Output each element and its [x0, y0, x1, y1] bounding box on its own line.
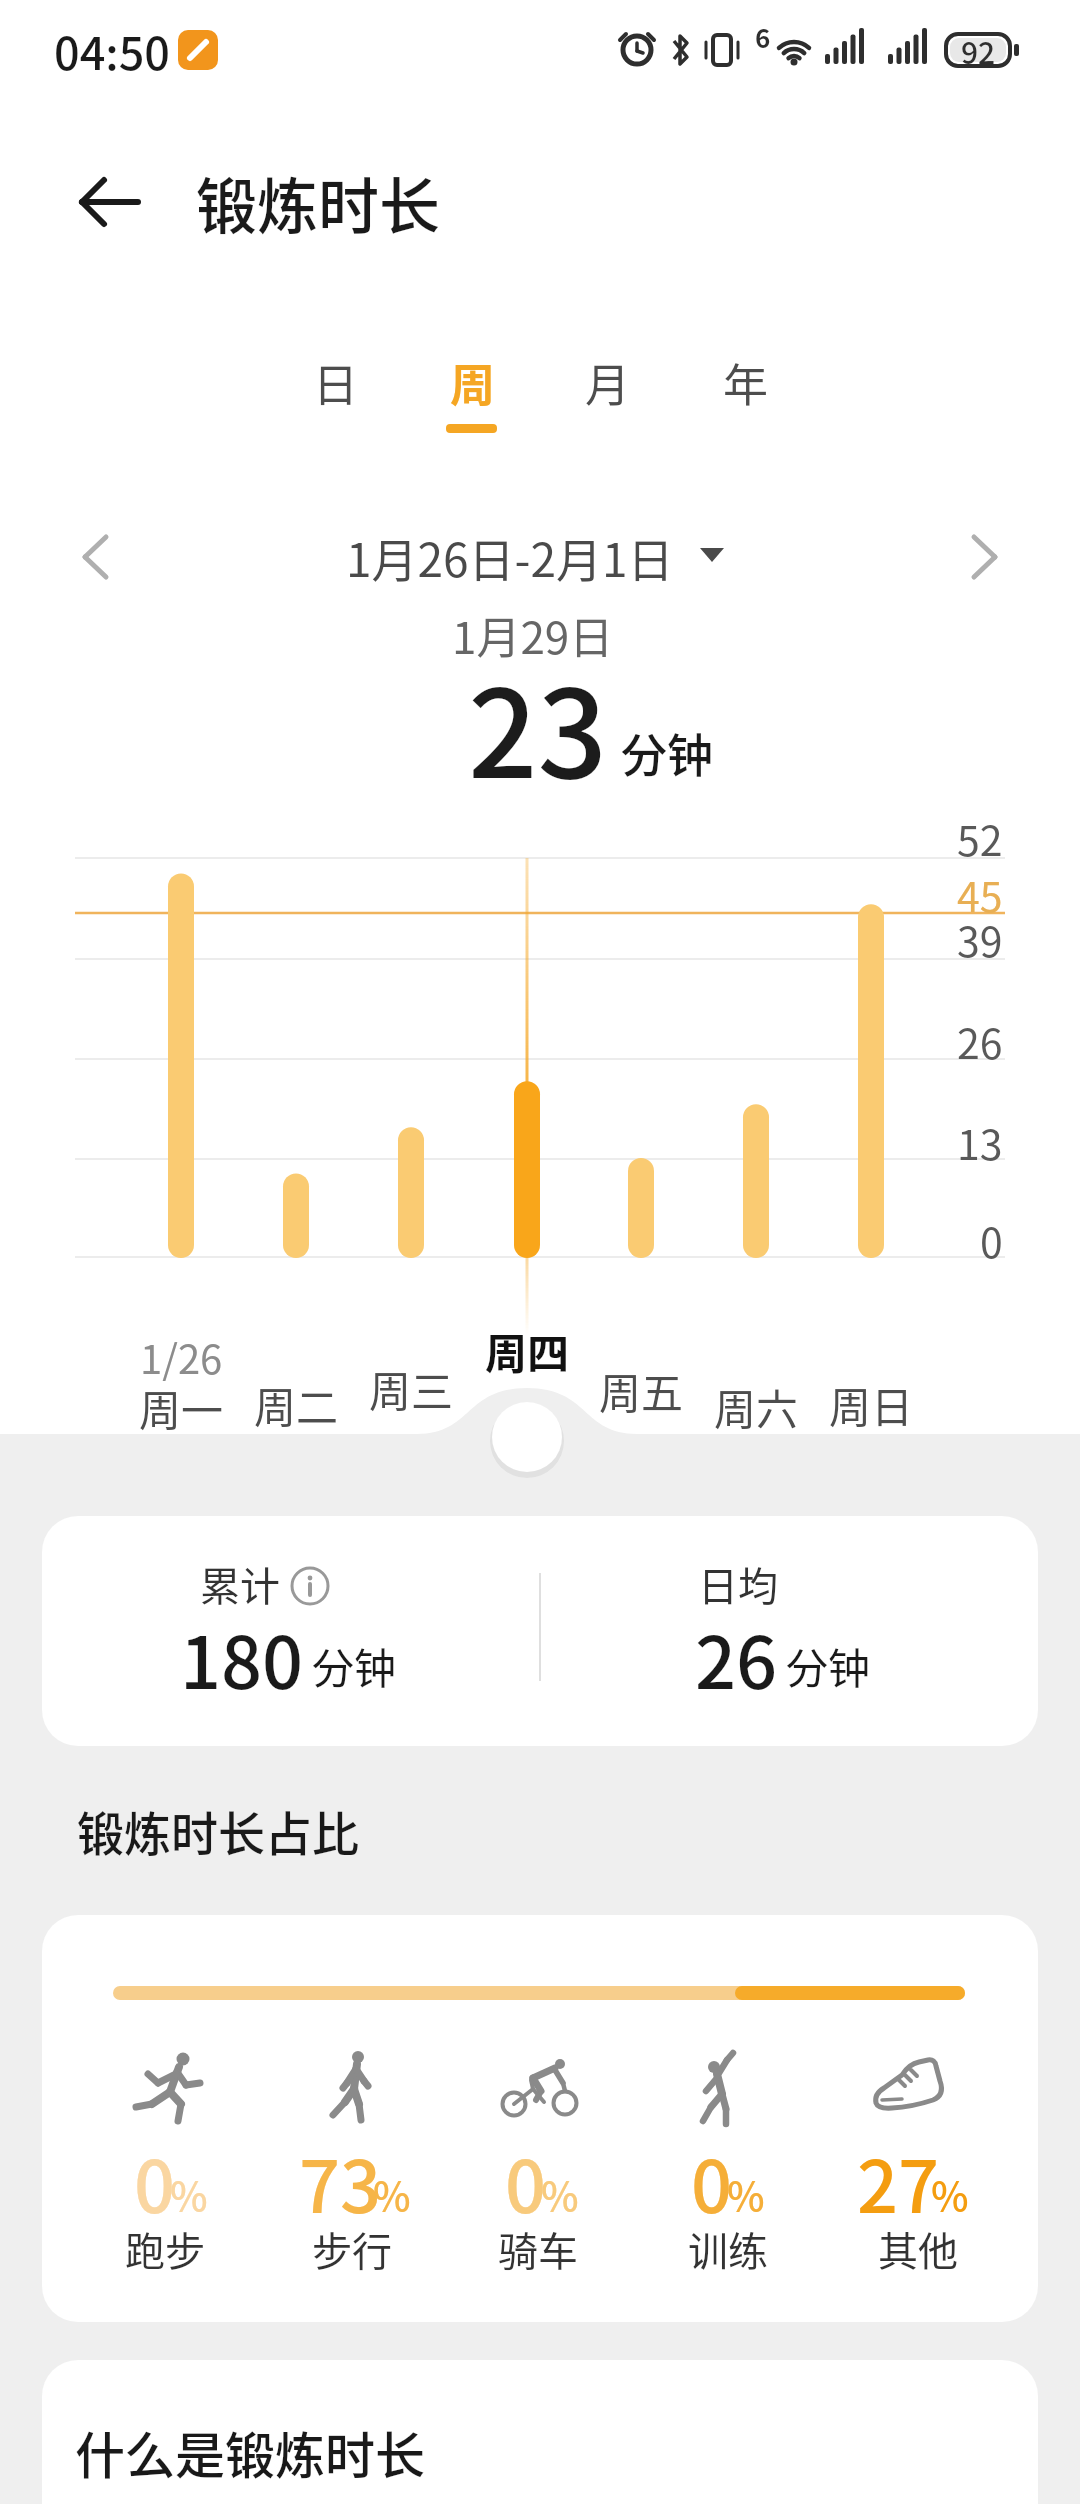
staticText: 1月26日-2月1日	[346, 524, 674, 591]
button[interactable]	[492, 1402, 562, 1472]
button[interactable]: 训练	[648, 2209, 808, 2289]
staticText: 周六	[714, 1376, 799, 1437]
button[interactable]	[70, 170, 150, 234]
staticText: 锻炼时长	[196, 158, 441, 246]
staticText: 分钟	[786, 1635, 871, 1696]
button[interactable]: 其他	[838, 2209, 998, 2289]
staticText: 分钟	[312, 1635, 397, 1696]
staticText: 累计	[200, 1555, 280, 1613]
staticText: 0	[505, 2129, 547, 2233]
staticText: 23	[468, 636, 608, 813]
staticText: 跑步	[125, 2220, 205, 2278]
staticText: 73	[299, 2129, 382, 2233]
staticText: %	[170, 2165, 208, 2223]
staticText: 周二	[254, 1374, 339, 1435]
staticText: 1月29日	[452, 603, 614, 667]
staticText: 什么是锻炼时长	[75, 2416, 425, 2488]
button[interactable]: 骑车	[458, 2209, 618, 2289]
staticText: 92	[961, 29, 996, 72]
staticText: 0	[980, 1210, 1003, 1269]
staticText: 年	[723, 350, 769, 415]
staticText: 26	[695, 1605, 778, 1709]
staticText: 04:50	[54, 18, 171, 83]
staticText: 周日	[829, 1374, 914, 1435]
staticText: 13	[957, 1112, 1003, 1171]
button[interactable]	[60, 520, 130, 594]
staticText: 6	[755, 18, 771, 56]
button[interactable]: 步行	[272, 2209, 432, 2289]
staticText: 周三	[369, 1358, 454, 1419]
button[interactable]: 月	[545, 337, 670, 427]
staticText: 0	[134, 2129, 176, 2233]
button[interactable]	[42, 2360, 1038, 2504]
staticText: 周五	[599, 1360, 684, 1421]
staticText: 周一	[139, 1377, 224, 1438]
staticText: 1/26	[140, 1328, 223, 1386]
staticText: 骑车	[498, 2220, 578, 2278]
button[interactable]: 1月26日-2月1日	[240, 511, 780, 603]
staticText: %	[373, 2165, 411, 2223]
staticText: 其他	[878, 2220, 958, 2278]
staticText: 步行	[312, 2220, 392, 2278]
button[interactable]: 跑步	[85, 2209, 245, 2289]
staticText: 26	[957, 1011, 1003, 1070]
button[interactable]	[288, 1564, 332, 1608]
staticText: 45	[957, 864, 1003, 923]
staticText: 日均	[698, 1555, 778, 1613]
staticText: 训练	[688, 2220, 768, 2278]
staticText: 52	[957, 808, 1003, 867]
staticText: 周	[450, 350, 496, 415]
staticText: 锻炼时长占比	[77, 1796, 359, 1864]
staticText: 周四	[485, 1320, 570, 1381]
staticText: 分钟	[621, 719, 713, 786]
staticText: %	[931, 2165, 969, 2223]
staticText: %	[541, 2165, 579, 2223]
staticText: 0	[691, 2129, 733, 2233]
button[interactable]: 周	[410, 337, 535, 427]
staticText: 日	[313, 350, 359, 415]
staticText: %	[727, 2165, 765, 2223]
staticText: 180	[180, 1605, 304, 1709]
button[interactable]: 日	[273, 337, 398, 427]
staticText: 月	[585, 350, 631, 415]
button[interactable]	[950, 520, 1020, 594]
staticText: 27	[857, 2129, 940, 2233]
button[interactable]: 年	[683, 337, 808, 427]
staticText: 39	[957, 909, 1003, 968]
